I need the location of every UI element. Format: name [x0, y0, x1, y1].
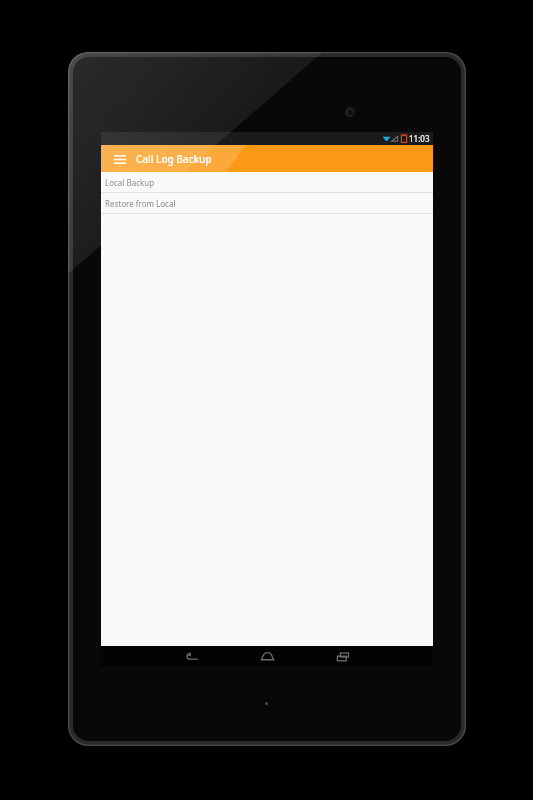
button[interactable]: Back	[176, 646, 206, 667]
staticText: Restore from Local	[105, 198, 176, 209]
button[interactable]: Open navigation drawer	[109, 147, 131, 171]
button[interactable]: Restore from Local	[101, 193, 433, 214]
staticText: Call Log Backup	[136, 152, 212, 166]
button[interactable]: Home	[252, 646, 282, 667]
button[interactable]: Recent apps	[328, 646, 358, 667]
staticText: Local Backup	[105, 177, 155, 188]
staticText: 11:03	[409, 133, 430, 144]
button[interactable]: Local Backup	[101, 172, 433, 193]
